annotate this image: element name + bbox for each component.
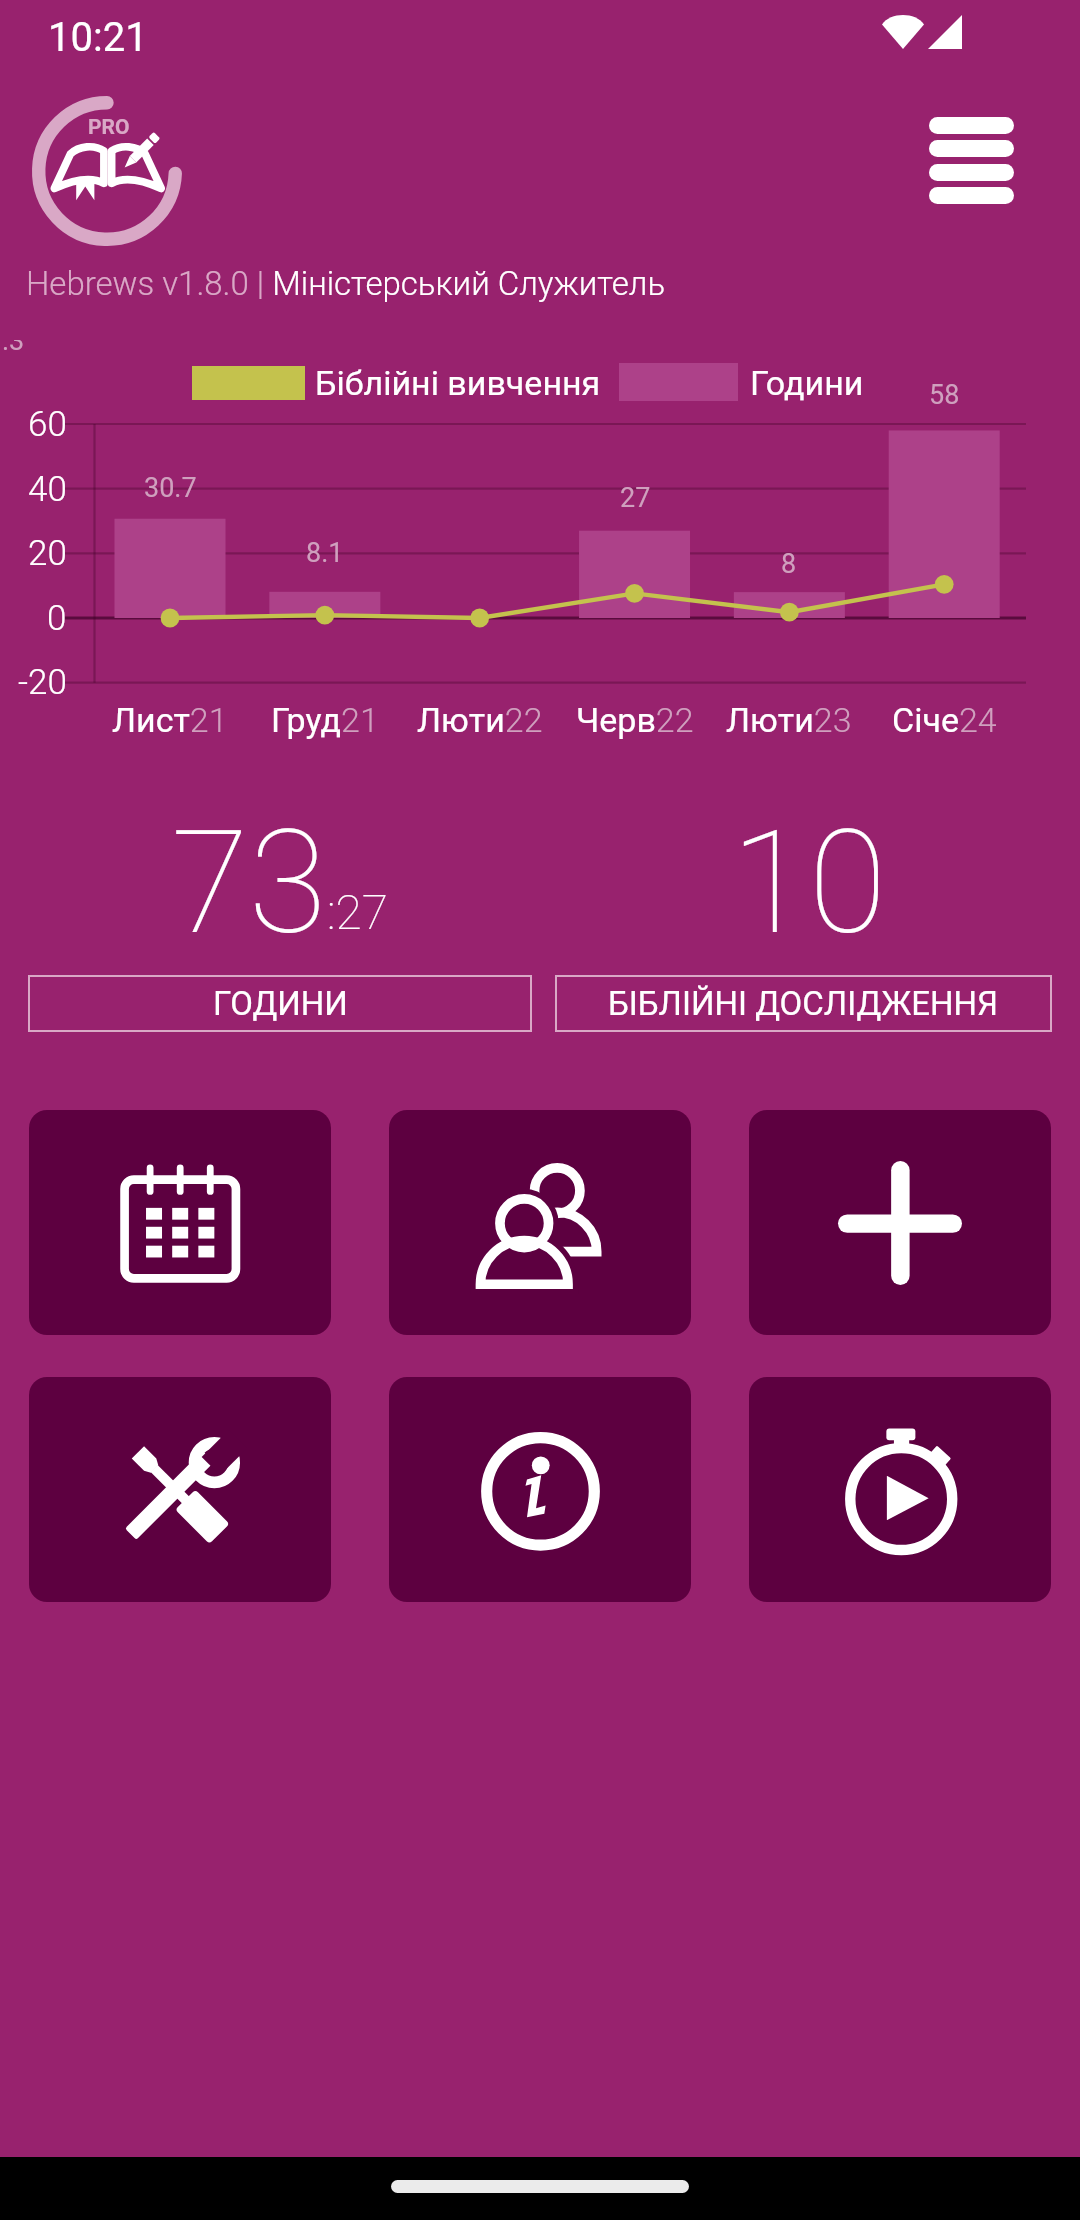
staticText: Hebrews v1.8.0 | Міністерський Служитель [26,264,666,303]
staticText: 73 [171,800,327,966]
button[interactable]: Tools [29,1377,331,1602]
button[interactable]: Add [749,1110,1051,1335]
staticText: Години [750,363,864,403]
staticText: Люти22 [417,700,543,740]
staticText: Люти23 [726,700,852,740]
staticText: 60 [28,404,67,445]
staticText: 20 [28,533,67,574]
staticText: 27 [620,482,651,514]
staticText: 58 [929,379,960,411]
staticText: :27 [327,884,389,940]
staticText: Лист21 [112,700,228,740]
staticText: Груд21 [271,700,379,740]
staticText: 8 [781,548,797,580]
button[interactable]: ГОДИНИ [28,975,532,1032]
button[interactable]: Menu [929,117,1014,204]
staticText: Черв22 [576,700,694,740]
staticText: Біблійні вивчення [315,363,601,403]
button[interactable]: БІБЛІЙНІ ДОСЛІДЖЕННЯ [555,975,1052,1032]
button[interactable]: Contacts [389,1110,691,1335]
button[interactable]: Info [389,1377,691,1602]
staticText: 0 [47,598,67,639]
staticText: -20 [18,662,67,703]
staticText: 10:21 [48,14,148,61]
staticText: 8.1 [306,537,344,569]
staticText: 10 [731,800,887,966]
button[interactable]: Timer [749,1377,1051,1602]
staticText: Січе24 [892,700,997,740]
staticText: 30.7 [144,472,197,504]
staticText: БІБЛІЙНІ ДОСЛІДЖЕННЯ [608,984,999,1023]
staticText: 40 [28,469,67,510]
staticText: PRO [88,115,130,140]
staticText: .3 [2,340,25,350]
staticText: ГОДИНИ [213,984,348,1023]
button[interactable]: Calendar [29,1110,331,1335]
